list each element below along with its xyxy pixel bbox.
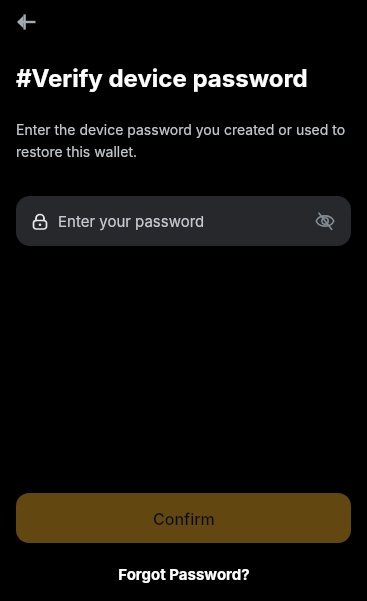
staticText: Confirm xyxy=(153,509,215,528)
button[interactable]: Forgot Password? xyxy=(118,565,250,583)
button[interactable]: Enter your password xyxy=(16,196,351,246)
staticText: #Verify device password xyxy=(16,64,308,93)
staticText: Enter your password xyxy=(58,212,205,230)
button[interactable] xyxy=(8,4,44,40)
button[interactable] xyxy=(315,211,335,231)
staticText: Enter the device password you created or… xyxy=(16,121,351,161)
staticText: Forgot Password? xyxy=(118,565,250,583)
button[interactable]: Confirm xyxy=(16,493,351,543)
